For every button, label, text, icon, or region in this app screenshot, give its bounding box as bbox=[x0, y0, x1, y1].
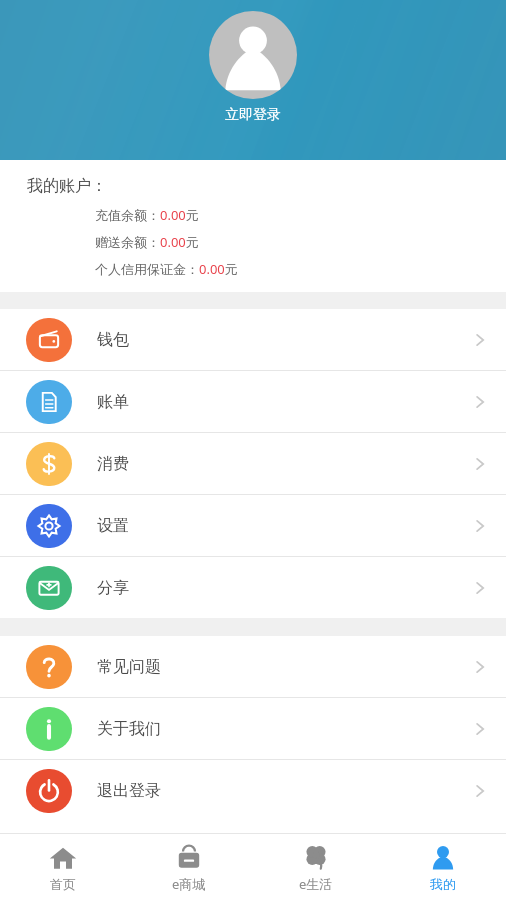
staticText: e商城 bbox=[172, 875, 206, 893]
button[interactable]: 立即登录 bbox=[209, 11, 297, 124]
staticText: 赠送余额：0.00元 bbox=[95, 233, 199, 251]
button[interactable]: 首页 bbox=[0, 834, 126, 900]
button[interactable]: e生活 bbox=[252, 834, 379, 900]
staticText: 退出登录 bbox=[97, 781, 161, 801]
button[interactable]: 分享 bbox=[0, 557, 506, 618]
staticText: 充值余额：0.00元 bbox=[95, 206, 199, 224]
staticText: 关于我们 bbox=[97, 719, 161, 739]
button[interactable]: 关于我们 bbox=[0, 698, 506, 759]
staticText: 我的账户： bbox=[27, 176, 107, 196]
staticText: 个人信用保证金：0.00元 bbox=[95, 260, 238, 278]
button[interactable]: 钱包 bbox=[0, 309, 506, 370]
button[interactable]: 常见问题 bbox=[0, 636, 506, 697]
staticText: 设置 bbox=[97, 516, 129, 536]
staticText: 钱包 bbox=[97, 330, 129, 350]
staticText: e生活 bbox=[299, 875, 333, 893]
staticText: 立即登录 bbox=[225, 106, 281, 124]
staticText: 账单 bbox=[97, 392, 129, 412]
button[interactable]: 消费 bbox=[0, 433, 506, 494]
staticText: 常见问题 bbox=[97, 657, 161, 677]
button[interactable]: e商城 bbox=[126, 834, 252, 900]
staticText: 消费 bbox=[97, 454, 129, 474]
button[interactable]: 账单 bbox=[0, 371, 506, 432]
button[interactable]: 退出登录 bbox=[0, 760, 506, 821]
staticText: 分享 bbox=[97, 578, 129, 598]
button[interactable]: 设置 bbox=[0, 495, 506, 556]
staticText: 首页 bbox=[50, 876, 76, 892]
button[interactable]: 我的 bbox=[379, 834, 506, 900]
staticText: 我的 bbox=[430, 876, 456, 892]
